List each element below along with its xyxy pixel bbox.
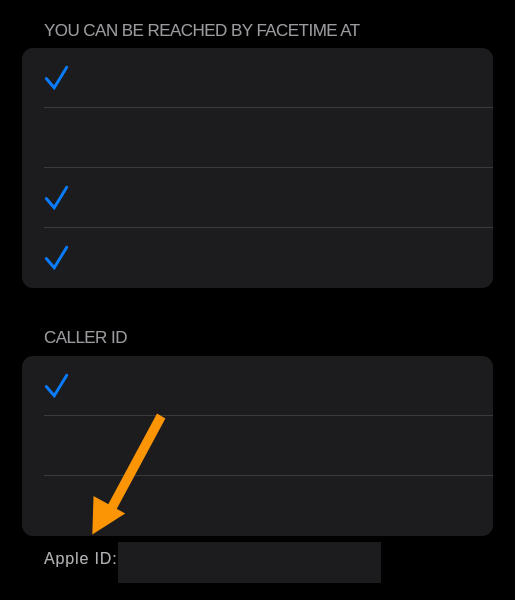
- button[interactable]: Caller ID Apple ID: [22, 476, 493, 536]
- button[interactable]: iPhone number: [22, 48, 493, 108]
- button[interactable]: Caller ID phone number: [22, 356, 493, 416]
- staticText: CALLER ID: [44, 328, 127, 347]
- staticText: Apple ID:: [44, 550, 118, 568]
- button[interactable]: Caller ID email: [22, 416, 493, 476]
- button[interactable]: Secondary email: [22, 228, 493, 288]
- button[interactable]: Email address: [22, 108, 493, 168]
- button[interactable]: Apple ID email: [22, 168, 493, 228]
- other: Annotation arrow pointing at Apple ID fi…: [0, 0, 515, 600]
- staticText: YOU CAN BE REACHED BY FACETIME AT: [44, 21, 360, 40]
